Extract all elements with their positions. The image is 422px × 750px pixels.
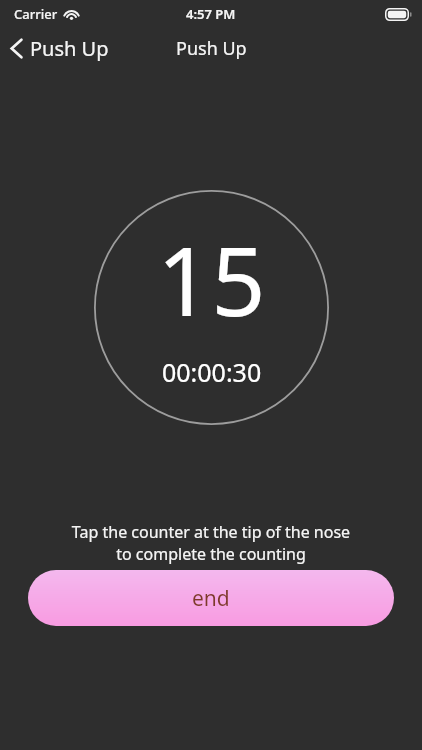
staticText: 15: [157, 214, 266, 343]
button[interactable]: Counter: [94, 190, 329, 425]
staticText: 4:57 PM: [186, 5, 236, 23]
staticText: Push Up: [176, 36, 247, 61]
button[interactable]: Push Up: [0, 29, 121, 68]
staticText: 00:00:30: [162, 355, 262, 389]
staticText: Tap the counter at the tip of the nose t…: [16, 521, 406, 565]
other: Battery: [385, 8, 412, 21]
staticText: Push Up: [30, 35, 109, 62]
staticText: end: [192, 584, 230, 613]
staticText: Carrier: [14, 5, 58, 23]
button[interactable]: end: [28, 570, 394, 626]
